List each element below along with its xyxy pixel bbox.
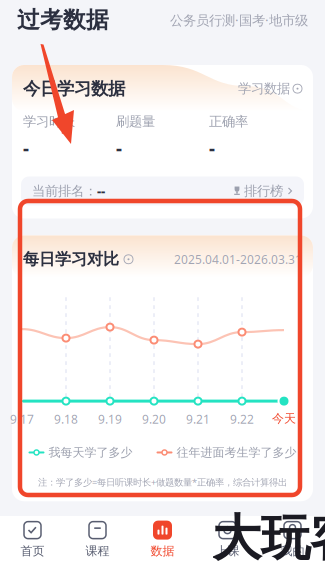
staticText: 刷题量 xyxy=(116,113,155,130)
staticText: 我的 xyxy=(280,544,304,558)
staticText: - xyxy=(23,136,29,160)
staticText: - xyxy=(209,136,215,160)
staticText: 公务员行测·国考·地市级 xyxy=(170,11,308,29)
button[interactable]: 我的 xyxy=(260,516,325,563)
staticText: 正确率 xyxy=(209,113,248,130)
button[interactable]: 上课 xyxy=(195,516,260,563)
staticText: 注：学了多少=每日听课时长+做题数量*正确率，综合计算得出 xyxy=(38,476,287,488)
button[interactable]: 当前排名： xyxy=(21,176,304,205)
staticText: 学习数据 xyxy=(238,80,290,97)
staticText: 9.17 xyxy=(10,411,34,427)
staticText: 9.20 xyxy=(142,411,166,427)
button[interactable]: 数据 xyxy=(130,516,195,563)
staticText: 首页 xyxy=(20,544,44,558)
button[interactable]: 课程 xyxy=(65,516,130,563)
staticText: 往年进面考生学了多少 xyxy=(176,445,296,460)
staticText: 上课 xyxy=(215,544,239,558)
staticText: 今天 xyxy=(272,411,296,426)
staticText: 学习时长 xyxy=(23,113,75,130)
staticText: 课程 xyxy=(85,544,109,558)
staticText: -- xyxy=(97,182,105,200)
button[interactable]: 学习数据 xyxy=(238,80,302,97)
button[interactable]: 公务员行测·国考·地市级 xyxy=(170,11,308,29)
staticText: 每日学习对比 xyxy=(23,249,119,269)
staticText: 我每天学了多少 xyxy=(48,445,132,460)
staticText: 9.21 xyxy=(186,411,210,427)
staticText: 排行榜 xyxy=(244,183,283,199)
staticText: - xyxy=(116,136,122,160)
staticText: 大玩客 xyxy=(212,508,325,563)
staticText: 过考数据 xyxy=(17,6,109,34)
staticText: 9.22 xyxy=(230,411,254,427)
staticText: 今日学习数据 xyxy=(23,78,125,99)
button[interactable]: 首页 xyxy=(0,516,65,563)
staticText: 9.18 xyxy=(54,411,78,427)
staticText: 当前排名： xyxy=(32,183,97,199)
staticText: 数据 xyxy=(150,544,174,558)
staticText: 2025.04.01-2026.03.31 xyxy=(174,251,302,267)
staticText: 9.19 xyxy=(98,411,122,427)
